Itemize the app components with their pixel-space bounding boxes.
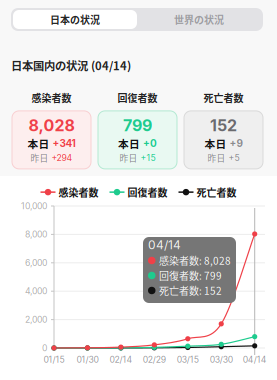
- staticText: 本日: [27, 136, 49, 151]
- button[interactable]: 世界の状況: [137, 10, 261, 29]
- staticText: 日本の状況: [50, 12, 100, 27]
- staticText: 回復者数: 799: [159, 268, 222, 283]
- staticText: 4,000: [25, 286, 47, 296]
- staticText: 死亡者数: [196, 185, 236, 199]
- staticText: 世界の状況: [174, 12, 224, 27]
- staticText: 2,000: [25, 314, 47, 325]
- staticText: 6,000: [25, 258, 47, 268]
- staticText: 昨日: [119, 152, 137, 164]
- staticText: 感染者数: [58, 185, 98, 199]
- staticText: 152: [210, 116, 237, 135]
- staticText: 01/15: [43, 354, 64, 365]
- staticText: 03/30: [210, 354, 233, 365]
- staticText: 8,028: [28, 116, 74, 135]
- staticText: +341: [52, 137, 75, 149]
- staticText: 04/14: [148, 238, 181, 252]
- staticText: +294: [51, 153, 72, 163]
- staticText: 感染者数: 8,028: [159, 253, 231, 268]
- staticText: 回復者数: [117, 90, 157, 105]
- staticText: 死亡者数: [203, 90, 243, 105]
- staticText: 昨日: [207, 152, 225, 164]
- staticText: 01/30: [76, 354, 98, 365]
- staticText: 02/14: [109, 354, 132, 365]
- staticText: 10,000: [21, 201, 47, 211]
- staticText: 回復者数: [127, 185, 167, 199]
- staticText: +15: [140, 153, 155, 163]
- staticText: +5: [228, 153, 239, 163]
- staticText: 日本国内の状況 (04/14): [11, 57, 131, 73]
- staticText: 799: [123, 116, 152, 135]
- button[interactable]: 日本の状況: [13, 10, 137, 29]
- staticText: 04/14: [243, 354, 267, 365]
- staticText: 死亡者数: 152: [159, 283, 222, 298]
- staticText: 8,000: [25, 229, 47, 240]
- staticText: +0: [143, 137, 157, 149]
- staticText: 02/29: [143, 354, 166, 365]
- staticText: +9: [229, 137, 242, 149]
- staticText: 本日: [118, 136, 140, 151]
- staticText: 本日: [204, 136, 226, 151]
- staticText: 03/15: [177, 354, 199, 365]
- staticText: 昨日: [30, 152, 48, 164]
- staticText: 感染者数: [31, 90, 71, 105]
- staticText: 0: [42, 343, 47, 353]
